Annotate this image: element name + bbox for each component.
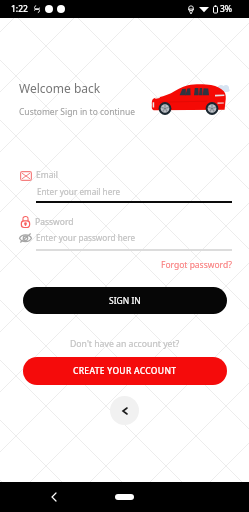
button[interactable]: Forgot password? bbox=[161, 259, 232, 271]
staticText: Enter your email here bbox=[37, 186, 121, 197]
staticText: 1:22 bbox=[11, 3, 28, 15]
staticText: 3% bbox=[220, 3, 233, 15]
staticText: CREATE YOUR ACCOUNT bbox=[73, 365, 177, 377]
staticText: Password bbox=[35, 216, 74, 228]
staticText: Enter your password here bbox=[36, 232, 136, 243]
button[interactable]: Back bbox=[44, 482, 64, 512]
button[interactable]: Back bbox=[110, 396, 139, 425]
staticText: Customer Sign in to continue bbox=[19, 106, 136, 118]
staticText: Welcome back bbox=[19, 80, 101, 96]
staticText: Don't have an account yet? bbox=[70, 338, 180, 350]
button[interactable]: SIGN IN bbox=[23, 287, 227, 314]
staticText: SIGN IN bbox=[109, 295, 141, 307]
button[interactable]: Home bbox=[115, 494, 134, 500]
staticText: Email bbox=[36, 169, 58, 181]
button[interactable]: CREATE YOUR ACCOUNT bbox=[23, 357, 227, 385]
